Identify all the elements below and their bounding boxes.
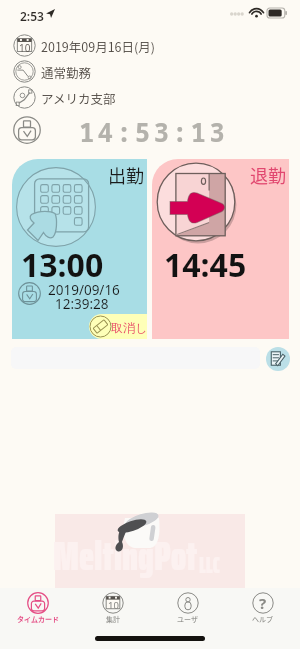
staticText: 2019/09/16 [48,281,120,299]
staticText: 出勤 [108,162,144,188]
button[interactable]: タイムカード [0,588,75,628]
staticText: 12:39:28 [55,295,109,313]
button[interactable]: 通常勤務 [0,59,300,84]
staticText: 10 [19,41,31,55]
staticText: MeltingPot [53,523,198,588]
button[interactable]: 出勤 [12,159,147,339]
staticText: タイムカード [17,614,59,624]
staticText: 取消し [111,320,147,335]
button[interactable]: 10 [75,588,150,628]
button[interactable]: 取消し [89,314,147,339]
button[interactable]: 10 [0,33,300,58]
staticText: アメリカ支部 [41,89,116,107]
staticText: ? [259,593,267,613]
staticText: 10 [108,599,119,612]
staticText: LLC [199,548,220,583]
staticText: 13:00 [21,243,104,287]
staticText: 退勤 [250,162,286,188]
staticText: ユーザ [177,614,198,624]
staticText: 14:53:13 [79,114,228,149]
staticText: 通常勤務 [41,63,92,81]
button[interactable]: Edit memo [266,347,290,371]
button[interactable]: ユーザ [150,588,225,628]
staticText: 2019年09月16日(月) [41,37,155,55]
button[interactable]: 退勤 [152,159,289,339]
staticText: ヘルプ [252,614,273,624]
button[interactable]: アメリカ支部 [0,85,300,110]
staticText: 2:53 [20,8,44,24]
staticText: 集計 [106,614,120,624]
button[interactable]: ? [225,588,300,628]
staticText: 14:45 [164,243,247,287]
